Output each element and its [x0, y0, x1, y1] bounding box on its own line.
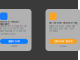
- staticText: the editor.: [49, 30, 59, 33]
- staticText: Update Now: [8, 40, 20, 43]
- staticText: 46.2 MB: [11, 45, 17, 47]
- staticText: Get Now: [60, 45, 66, 47]
- staticText: full release notes.: [0, 33, 16, 35]
- staticText: list and re-sorted by date.: [0, 28, 25, 30]
- staticText: Open Skyscale 12 to see the: [0, 30, 26, 33]
- staticText: Version of Skyscale Available: [0, 21, 19, 25]
- staticText: Pages 12.1 is out. Draw, sign: [49, 25, 75, 27]
- staticText: updates are merged into one: [0, 25, 27, 27]
- staticText: Get the New Version of Pag: [49, 22, 77, 24]
- button[interactable]: Update Now: [0, 39, 28, 44]
- staticText: Open New Version: [53, 40, 72, 43]
- button[interactable]: Open New Version: [49, 39, 77, 44]
- staticText: and share PDFs right from: [49, 28, 74, 30]
